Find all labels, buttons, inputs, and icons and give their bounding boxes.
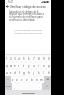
staticText: 0 — [48, 57, 50, 61]
button[interactable]: 5 — [21, 55, 26, 62]
button[interactable]: w — [9, 62, 13, 69]
button[interactable]: 0 — [46, 55, 51, 62]
button[interactable]: n — [34, 76, 39, 83]
staticText: Introduce el código de 6 dígitos que hem… — [9, 10, 47, 22]
button[interactable]: 2 — [9, 55, 13, 62]
button[interactable]: ñ — [46, 69, 51, 76]
staticText: x — [16, 78, 18, 82]
button[interactable]: 7 — [31, 55, 36, 62]
button[interactable]: c — [19, 76, 24, 83]
staticText: 6 — [28, 57, 30, 61]
button[interactable]: y — [26, 62, 31, 69]
staticText: b — [31, 78, 33, 82]
button[interactable]: g — [21, 69, 26, 76]
button[interactable]: a — [5, 69, 9, 76]
staticText: v — [26, 78, 28, 82]
staticText: 8 — [38, 57, 40, 61]
button[interactable]: d — [13, 69, 17, 76]
staticText: 9:41 — [8, 0, 14, 4]
button[interactable]: h — [26, 69, 31, 76]
staticText: ?123 — [6, 85, 11, 88]
button[interactable]: b — [29, 76, 34, 83]
staticText: z — [12, 78, 14, 82]
staticText: t — [23, 64, 25, 68]
button[interactable]: Back — [5, 4, 10, 9]
button[interactable]: p — [46, 62, 51, 69]
staticText: 3 — [14, 57, 16, 61]
button[interactable]: . — [37, 83, 42, 90]
button[interactable]: f — [17, 69, 21, 76]
staticText: j — [33, 71, 34, 75]
staticText: e — [14, 64, 16, 68]
staticText: ñ — [48, 71, 50, 75]
button[interactable]: m — [39, 76, 44, 83]
staticText: 2 — [10, 57, 12, 61]
button[interactable]: z — [11, 76, 15, 83]
button[interactable]: j — [31, 69, 36, 76]
staticText: ⇧ — [7, 78, 9, 81]
staticText: p — [48, 64, 50, 68]
button[interactable]: i — [36, 62, 41, 69]
button[interactable]: l — [41, 69, 46, 76]
staticText: 4 — [18, 57, 20, 61]
staticText: 1 — [6, 57, 8, 61]
staticText: ↵ — [46, 85, 48, 88]
staticText: . — [39, 85, 40, 89]
button[interactable]: o — [41, 62, 46, 69]
staticText: Verificar código de acceso — [10, 5, 46, 9]
staticText: n — [36, 78, 38, 82]
staticText: 9 — [43, 57, 45, 61]
staticText: s — [10, 71, 12, 75]
button[interactable]: k — [36, 69, 41, 76]
staticText: r — [18, 64, 20, 68]
staticText: d — [14, 71, 16, 75]
staticText: ⌫ — [46, 78, 50, 81]
staticText: g — [23, 71, 25, 75]
staticText: k — [38, 71, 40, 75]
staticText: o — [43, 64, 45, 68]
button[interactable]: x — [15, 76, 19, 83]
staticText: 7 — [33, 57, 35, 61]
button[interactable]: s — [9, 69, 13, 76]
staticText: f — [19, 71, 20, 75]
button[interactable]: 3 — [13, 55, 17, 62]
button[interactable]: q — [5, 62, 9, 69]
staticText: ¿No has recibido el código? Solicitar un… — [9, 29, 47, 35]
button[interactable]: Symbols — [5, 83, 12, 90]
staticText: w — [10, 64, 13, 68]
button[interactable]: Backspace — [44, 76, 51, 83]
staticText: m — [40, 78, 43, 82]
staticText: h — [28, 71, 30, 75]
button[interactable]: , — [12, 83, 17, 90]
button[interactable]: 6 — [26, 55, 31, 62]
staticText: i — [38, 64, 39, 68]
button[interactable]: 1 — [5, 55, 9, 62]
staticText: l — [43, 71, 44, 75]
button[interactable]: 8 — [36, 55, 41, 62]
button[interactable]: 9 — [41, 55, 46, 62]
staticText: , — [14, 85, 15, 89]
staticText: y — [28, 64, 30, 68]
staticText: c — [21, 78, 23, 82]
staticText: a — [6, 71, 8, 75]
button[interactable]: Enter — [42, 83, 51, 90]
button[interactable]: u — [31, 62, 36, 69]
button[interactable]: t — [21, 62, 26, 69]
staticText: u — [33, 64, 35, 68]
button[interactable]: r — [17, 62, 21, 69]
staticText: q — [6, 64, 8, 68]
button[interactable]: e — [13, 62, 17, 69]
button[interactable]: Shift — [5, 76, 11, 83]
button[interactable]: 4 — [17, 55, 21, 62]
button[interactable]: v — [24, 76, 29, 83]
staticText: 5 — [23, 57, 25, 61]
